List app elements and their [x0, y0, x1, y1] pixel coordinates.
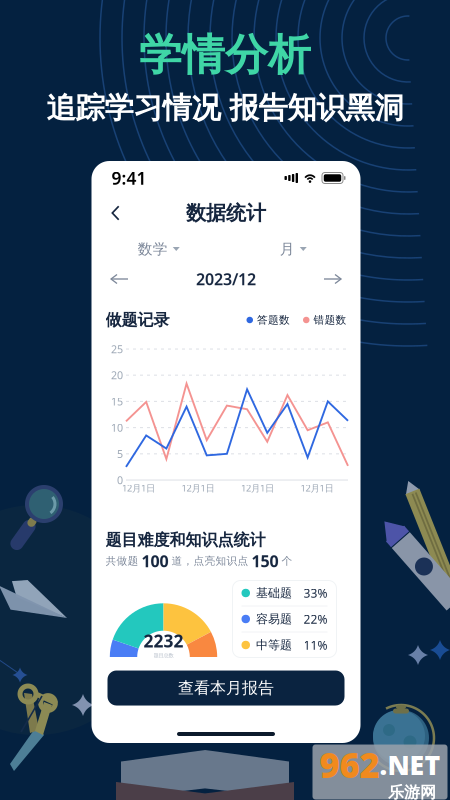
button[interactable]: Previous month — [103, 266, 135, 292]
staticText: 2232 — [143, 629, 183, 652]
button[interactable]: Next month — [316, 266, 348, 292]
staticText: .NET — [379, 747, 440, 782]
button[interactable]: 查看本月报告 — [107, 670, 344, 705]
staticText: 12月1日 — [181, 482, 214, 494]
staticText: 月 — [280, 240, 295, 258]
staticText: 错题数 — [313, 313, 346, 326]
staticText: 10 — [111, 420, 123, 435]
staticText: 追踪学习情况 报告知识黑洞 — [46, 90, 403, 126]
staticText: 0 — [117, 473, 123, 487]
staticText: 中等题 — [256, 638, 292, 652]
staticText: 道，点亮知识点 — [168, 554, 251, 567]
staticText: 2023/12 — [196, 268, 256, 290]
staticText: 5 — [117, 447, 123, 461]
button[interactable]: 月 — [226, 237, 360, 261]
staticText: 学情分析 — [139, 29, 311, 81]
staticText: 22% — [303, 611, 327, 627]
staticText: 题目总数 — [153, 652, 173, 659]
staticText: 25 — [111, 342, 123, 356]
staticText: 答题数 — [257, 313, 290, 326]
staticText: 12月1日 — [122, 482, 155, 494]
staticText: 数学 — [138, 240, 168, 258]
staticText: 100 — [141, 550, 168, 572]
button[interactable]: Back — [100, 198, 130, 228]
staticText: 乐游网 — [388, 783, 436, 800]
staticText: 20 — [111, 368, 123, 382]
staticText: 15 — [111, 394, 123, 408]
staticText: 做题记录 — [105, 310, 169, 330]
staticText: 查看本月报告 — [178, 678, 274, 698]
staticText: 9:41 — [111, 166, 146, 189]
staticText: 12月1日 — [300, 482, 333, 494]
staticText: 33% — [303, 585, 327, 601]
staticText: 150 — [251, 550, 278, 572]
staticText: 题目难度和知识点统计 — [105, 530, 265, 550]
staticText: 共做题 — [105, 554, 141, 567]
button[interactable]: 数学 — [91, 237, 226, 261]
staticText: 962 — [319, 742, 379, 788]
staticText: 12月1日 — [241, 482, 274, 494]
staticText: 容易题 — [256, 612, 292, 626]
staticText: 11% — [303, 637, 327, 653]
staticText: 基础题 — [256, 586, 292, 600]
staticText: 数据统计 — [186, 201, 266, 225]
staticText: 个 — [278, 554, 292, 567]
